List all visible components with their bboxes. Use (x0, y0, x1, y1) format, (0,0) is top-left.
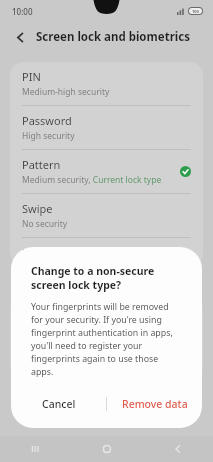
staticText: 10:00 (12, 6, 33, 17)
button[interactable]: Recent apps (0, 436, 71, 462)
staticText: Medium-high security (22, 86, 110, 98)
staticText: Pattern (22, 157, 61, 172)
staticText: 100 (192, 9, 199, 14)
staticText: Register your face (22, 321, 95, 333)
button[interactable]: Home (71, 436, 142, 462)
button[interactable]: Back (10, 27, 30, 47)
button[interactable]: Swipe (10, 194, 203, 237)
staticText: Screen lock and biometrics (36, 29, 190, 45)
staticText: Password (22, 113, 72, 128)
staticText: Biometrics (18, 277, 62, 289)
button[interactable]: None (10, 238, 203, 267)
staticText: Medium security, Current lock type (22, 174, 162, 186)
staticText: PIN (22, 69, 41, 84)
staticText: Face recognition (22, 304, 108, 319)
button[interactable]: Password (10, 106, 203, 149)
staticText: None (22, 245, 51, 260)
button[interactable]: Cancel (11, 391, 106, 417)
staticText: Remove data (122, 397, 188, 411)
staticText: Cancel (42, 397, 76, 411)
button[interactable]: Pattern (10, 150, 203, 193)
button[interactable]: PIN (10, 62, 203, 105)
staticText: Your fingerprints will be removed for yo… (31, 301, 182, 377)
button[interactable]: Remove data (107, 391, 202, 417)
staticText: Change to a non-secure screen lock type? (31, 264, 182, 292)
staticText: No security (22, 218, 68, 230)
button[interactable]: Face recognition (10, 296, 203, 341)
staticText: High security (22, 130, 75, 142)
staticText: Swipe (22, 201, 53, 216)
